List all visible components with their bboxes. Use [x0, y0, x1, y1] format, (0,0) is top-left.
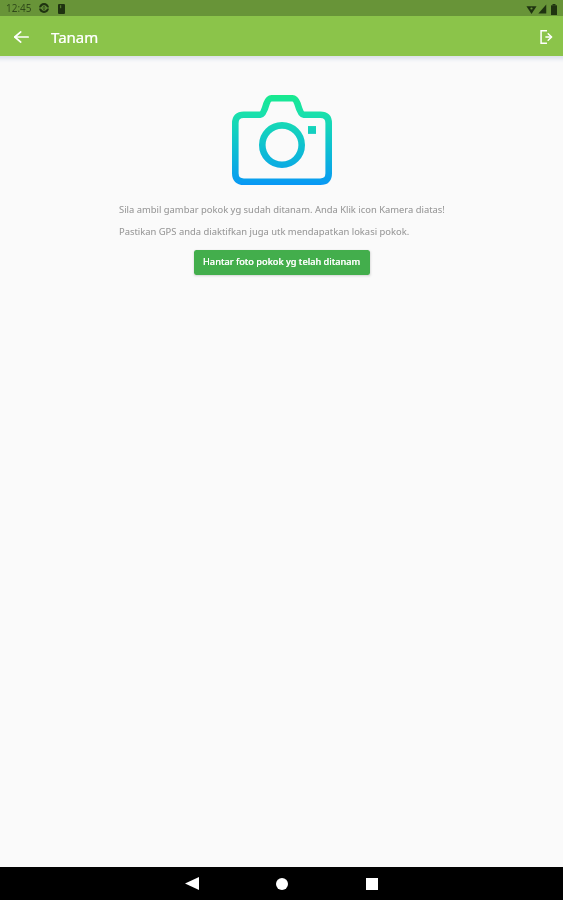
staticText: Sila ambil gambar pokok yg sudah ditanam…: [119, 203, 445, 216]
button[interactable]: Hantar foto pokok yg telah ditanam: [194, 250, 370, 275]
button[interactable]: Take photo with camera: [232, 95, 332, 185]
staticText: Tanam: [51, 27, 99, 47]
button[interactable]: Recent apps: [349, 867, 395, 900]
button[interactable]: Home: [259, 867, 305, 900]
button[interactable]: Logout: [533, 24, 559, 50]
button[interactable]: Back: [169, 867, 215, 900]
button[interactable]: Navigate back: [9, 25, 33, 49]
staticText: 12:45: [6, 1, 32, 15]
staticText: Pastikan GPS anda diaktifkan juga utk me…: [119, 225, 410, 238]
staticText: Hantar foto pokok yg telah ditanam: [203, 255, 361, 268]
